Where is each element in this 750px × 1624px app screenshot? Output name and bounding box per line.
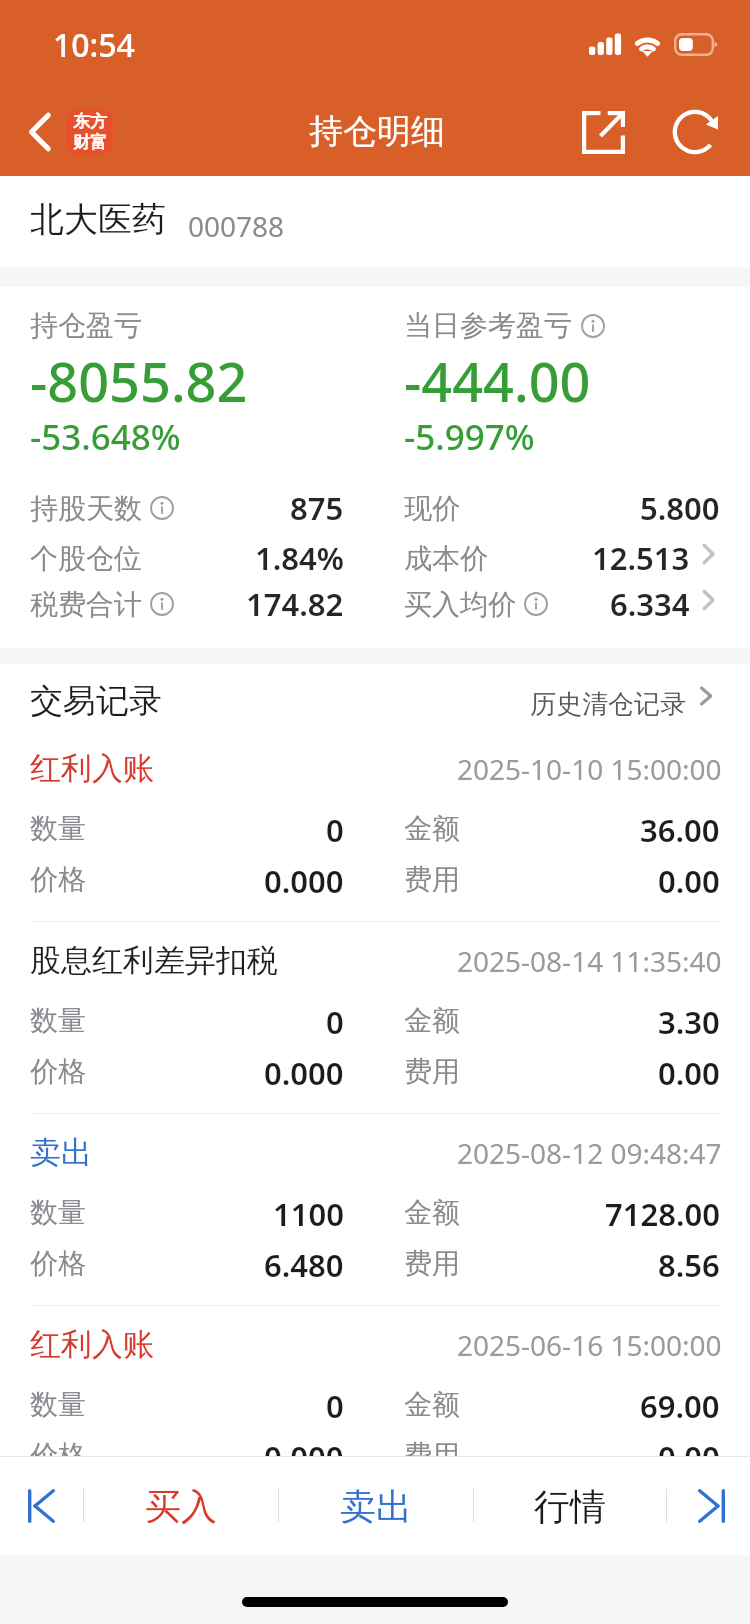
staticText: 财富	[73, 132, 107, 153]
button[interactable]: 买入	[83, 1457, 278, 1555]
staticText: 持股天数	[30, 491, 142, 525]
staticText: 金额	[404, 811, 460, 846]
staticText: 10:54	[53, 23, 135, 67]
button[interactable]: 行情	[473, 1457, 666, 1555]
staticText: 金额	[404, 1003, 460, 1038]
button[interactable]: 股息红利差异扣税	[0, 922, 750, 1113]
staticText: 6.480	[264, 1244, 344, 1286]
staticText: 股息红利差异扣税	[30, 941, 278, 980]
staticText: 0.000	[264, 860, 344, 902]
staticText: -53.648%	[30, 413, 181, 461]
staticText: 持仓盈亏	[30, 308, 142, 343]
staticText: 875	[290, 487, 344, 521]
staticText: 卖出	[340, 1484, 412, 1529]
staticText: 3.30	[658, 1001, 720, 1043]
staticText: 卖出	[30, 1133, 92, 1172]
staticText: 12.513	[592, 537, 690, 571]
staticText: -444.00	[404, 344, 591, 418]
staticText: 红利入账	[30, 1325, 154, 1364]
staticText: 现价	[404, 491, 460, 525]
button[interactable]: 卖出	[278, 1457, 473, 1555]
staticText: 金额	[404, 1387, 460, 1422]
staticText: 成本价	[404, 541, 488, 575]
staticText: 费用	[404, 1438, 460, 1456]
staticText: 000788	[188, 207, 285, 245]
staticText: 0	[326, 1001, 344, 1043]
staticText: 价格	[30, 1246, 86, 1281]
staticText: 税费合计	[30, 587, 142, 621]
staticText: 数量	[30, 811, 86, 846]
staticText: 0.000	[264, 1052, 344, 1094]
staticText: 0.00	[658, 1052, 720, 1094]
staticText: 7128.00	[605, 1193, 720, 1235]
staticText: 价格	[30, 1438, 86, 1456]
staticText: 东方	[73, 111, 107, 132]
button[interactable]: 卖出	[0, 1114, 750, 1305]
staticText: 费用	[404, 862, 460, 897]
staticText: 北大医药	[30, 198, 166, 241]
staticText: 数量	[30, 1003, 86, 1038]
staticText: 买入	[145, 1484, 217, 1529]
staticText: 持仓明细	[309, 110, 445, 153]
staticText: 1100	[273, 1193, 344, 1235]
staticText: 174.82	[246, 583, 344, 617]
staticText: 36.00	[640, 809, 720, 851]
staticText: 8.56	[658, 1244, 720, 1286]
staticText: 买入均价	[404, 587, 516, 621]
staticText: -8055.82	[30, 344, 248, 418]
button[interactable]: Last page	[669, 1457, 750, 1555]
staticText: 0.00	[658, 860, 720, 902]
staticText: 价格	[30, 1054, 86, 1089]
staticText: 费用	[404, 1054, 460, 1089]
button[interactable]: First page	[0, 1457, 83, 1555]
staticText: 数量	[30, 1387, 86, 1422]
staticText: 1.84%	[255, 537, 344, 571]
staticText: 历史清仓记录	[530, 688, 686, 721]
staticText: 个股仓位	[30, 541, 142, 575]
staticText: 费用	[404, 1246, 460, 1281]
staticText: 价格	[30, 862, 86, 897]
staticText: 数量	[30, 1195, 86, 1230]
staticText: 5.800	[640, 487, 720, 521]
button[interactable]: 历史清仓记录	[524, 675, 720, 716]
staticText: 0	[326, 809, 344, 851]
button[interactable]: 红利入账	[0, 1306, 750, 1456]
staticText: 金额	[404, 1195, 460, 1230]
button[interactable]: 红利入账	[0, 736, 750, 921]
staticText: 0	[326, 1385, 344, 1427]
staticText: 2025-08-14 11:35:40	[457, 942, 722, 980]
staticText: 0.00	[658, 1436, 720, 1456]
staticText: 2025-08-12 09:48:47	[457, 1134, 722, 1172]
staticText: 当日参考盈亏	[404, 308, 572, 343]
staticText: 0.000	[264, 1436, 344, 1456]
staticText: 红利入账	[30, 749, 154, 788]
staticText: 6.334	[610, 583, 690, 617]
staticText: -5.997%	[404, 413, 535, 461]
staticText: 行情	[534, 1484, 606, 1529]
staticText: 2025-06-16 15:00:00	[457, 1326, 722, 1364]
staticText: 交易记录	[30, 680, 162, 722]
button[interactable]: Refresh	[654, 90, 736, 174]
staticText: 69.00	[640, 1385, 720, 1427]
button[interactable]: Back to 东方财富	[0, 88, 125, 176]
staticText: 2025-10-10 15:00:00	[457, 750, 722, 788]
button[interactable]: Share	[561, 90, 645, 174]
